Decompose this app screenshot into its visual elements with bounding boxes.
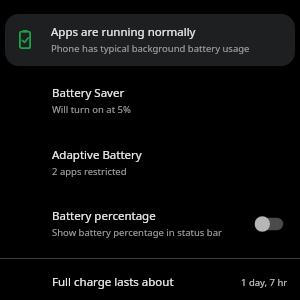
staticText: Battery percentage bbox=[52, 208, 156, 224]
button[interactable]: Battery percentage bbox=[0, 206, 300, 241]
button[interactable]: Battery Saver bbox=[0, 83, 300, 118]
staticText: Show battery percentage in status bar bbox=[52, 226, 222, 239]
staticText: Apps are running normally bbox=[51, 24, 196, 40]
button[interactable]: Full charge lasts about bbox=[0, 272, 300, 292]
staticText: 1 day, 7 hr bbox=[241, 276, 288, 289]
staticText: Will turn on at 5% bbox=[52, 103, 131, 116]
staticText: Battery Saver bbox=[52, 85, 125, 101]
button[interactable]: Adaptive Battery bbox=[0, 145, 300, 180]
button[interactable]: Battery status normal bbox=[5, 14, 295, 66]
button[interactable]: Battery percentage toggle, off bbox=[255, 214, 287, 234]
staticText: Adaptive Battery bbox=[52, 147, 142, 163]
staticText: Full charge lasts about bbox=[52, 274, 174, 290]
staticText: Phone has typical background battery usa… bbox=[51, 42, 250, 55]
staticText: 2 apps restricted bbox=[52, 165, 127, 178]
other: Battery status normal bbox=[19, 30, 31, 49]
